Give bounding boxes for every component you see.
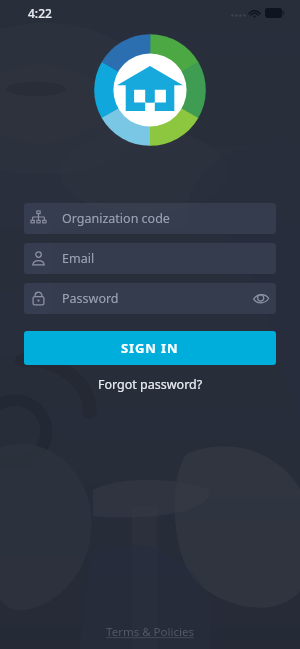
button[interactable]: Terms & Policies bbox=[100, 622, 200, 642]
staticText: 4:22 bbox=[28, 5, 52, 21]
staticText: Organization code bbox=[62, 210, 170, 227]
button[interactable]: SIGN IN bbox=[24, 331, 276, 365]
staticText: Email bbox=[62, 250, 95, 267]
button[interactable]: Forgot password? bbox=[92, 374, 209, 395]
staticText: SIGN IN bbox=[121, 339, 179, 357]
staticText: Password bbox=[62, 290, 119, 307]
button[interactable]: Organization code bbox=[24, 203, 276, 234]
button[interactable]: Password bbox=[24, 283, 276, 314]
button[interactable]: Show password bbox=[246, 283, 276, 314]
button[interactable]: Email bbox=[24, 243, 276, 274]
